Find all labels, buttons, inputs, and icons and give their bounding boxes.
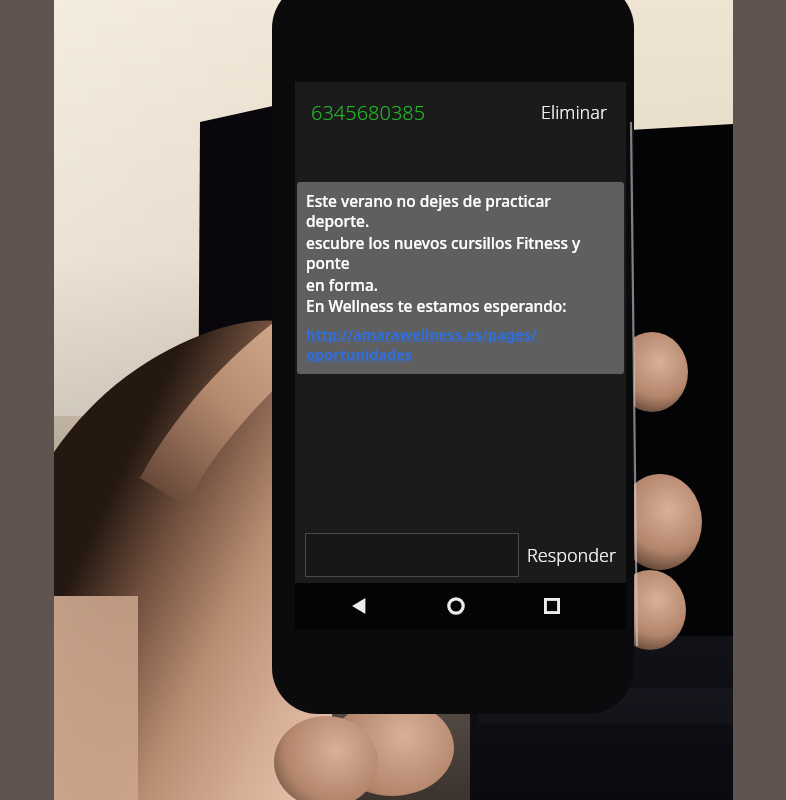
staticText: escubre los nuevos cursillos Fitness y p… (306, 232, 618, 274)
button[interactable]: Este verano no dejes de practicar deport… (297, 182, 624, 374)
button[interactable]: Back (338, 584, 382, 628)
button[interactable]: Recent apps (530, 584, 574, 628)
staticText: en forma. (306, 274, 378, 295)
button[interactable]: Responder (519, 535, 625, 576)
staticText: Este verano no dejes de practicar deport… (306, 190, 618, 232)
button[interactable]: 6345680385 (307, 95, 430, 130)
button[interactable]: Eliminar (531, 94, 618, 131)
staticText: En Wellness te estamos esperando: (306, 295, 567, 316)
staticText: Responder (527, 543, 617, 568)
button[interactable]: Home (434, 584, 478, 628)
staticText: 6345680385 (311, 99, 426, 126)
button[interactable]: Message input (305, 533, 519, 577)
staticText: Eliminar (541, 100, 608, 125)
button[interactable]: http://amarawellness.es/pages/oportunida… (306, 324, 618, 364)
